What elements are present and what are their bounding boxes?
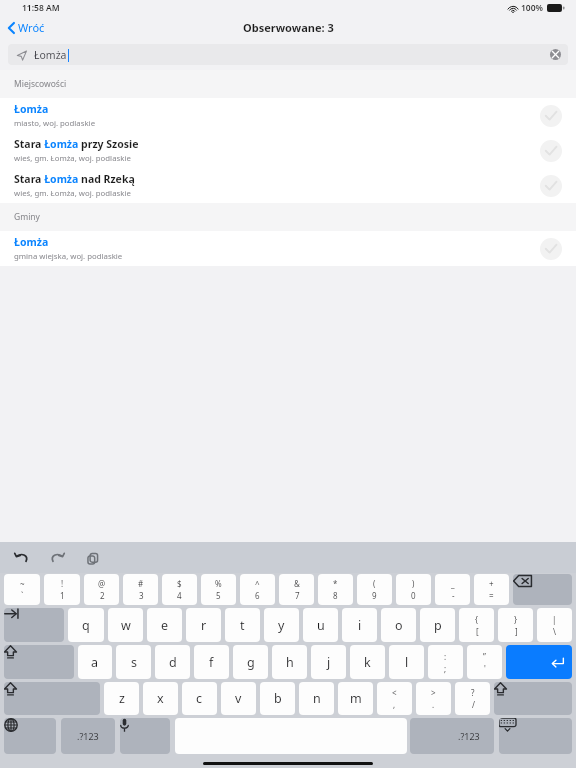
staticText: [ — [476, 626, 479, 637]
button[interactable]: z — [104, 682, 139, 715]
staticText: g — [247, 654, 255, 671]
button[interactable]: Stara Łomża nad Rzeką — [0, 168, 576, 203]
staticText: 100% — [521, 2, 544, 14]
button[interactable]: r — [186, 608, 221, 642]
button[interactable]: Paste — [82, 547, 104, 569]
button[interactable]: h — [272, 645, 307, 679]
button[interactable]: Dictation — [120, 718, 170, 754]
button[interactable]: $ — [162, 574, 197, 605]
button[interactable]: m — [338, 682, 373, 715]
button[interactable]: < — [377, 682, 412, 715]
button[interactable]: * — [318, 574, 353, 605]
button[interactable]: Shift — [4, 682, 100, 715]
button[interactable]: c — [182, 682, 217, 715]
staticText: 1 — [60, 590, 65, 601]
button[interactable]: u — [303, 608, 338, 642]
button[interactable]: Tab — [4, 608, 64, 642]
button[interactable]: Undo — [10, 547, 32, 569]
button[interactable]: Wróć — [0, 18, 55, 37]
button[interactable]: .?123 — [410, 718, 494, 754]
staticText: % — [215, 578, 222, 589]
button[interactable]: ( — [357, 574, 392, 605]
button[interactable]: Add to watched — [540, 175, 562, 197]
button[interactable]: | — [537, 608, 572, 642]
button[interactable]: Change keyboard language — [4, 718, 56, 754]
button[interactable]: b — [260, 682, 295, 715]
button[interactable]: Add to watched — [540, 140, 562, 162]
staticText: w — [121, 617, 131, 634]
staticText: ` — [21, 590, 24, 601]
staticText: - — [452, 590, 455, 601]
staticText: j — [327, 654, 331, 671]
staticText: z — [119, 690, 125, 707]
button[interactable]: Łomża — [8, 44, 568, 65]
button[interactable]: Add to watched — [540, 238, 562, 260]
staticText: p — [434, 617, 442, 634]
staticText: q — [82, 617, 90, 634]
staticText: ; — [444, 663, 447, 674]
button[interactable]: ! — [44, 574, 80, 605]
staticText: a — [91, 654, 99, 671]
button[interactable]: Return — [506, 645, 572, 679]
button[interactable]: _ — [435, 574, 470, 605]
button[interactable]: t — [225, 608, 260, 642]
button[interactable]: d — [155, 645, 190, 679]
button[interactable]: o — [381, 608, 416, 642]
button[interactable]: v — [221, 682, 256, 715]
button[interactable]: ) — [396, 574, 431, 605]
button[interactable]: q — [68, 608, 104, 642]
button[interactable]: n — [299, 682, 334, 715]
staticText: \ — [553, 626, 556, 637]
button[interactable]: Backspace — [513, 574, 572, 605]
button[interactable]: % — [201, 574, 236, 605]
staticText: k — [364, 654, 371, 671]
staticText: i — [358, 617, 362, 634]
button[interactable]: + — [474, 574, 509, 605]
button[interactable]: .?123 — [61, 718, 115, 754]
button[interactable]: } — [498, 608, 533, 642]
staticText: r — [201, 617, 207, 634]
button[interactable]: ? — [455, 682, 490, 715]
button[interactable]: Łomża — [0, 231, 576, 266]
button[interactable]: Redo — [46, 547, 68, 569]
button[interactable]: ^ — [240, 574, 275, 605]
staticText: ! — [61, 578, 64, 589]
button[interactable]: e — [147, 608, 182, 642]
button[interactable]: { — [459, 608, 494, 642]
button[interactable]: y — [264, 608, 299, 642]
button[interactable]: w — [108, 608, 143, 642]
button[interactable]: Add to watched — [540, 105, 562, 127]
staticText: e — [161, 617, 169, 634]
staticText: Wróć — [18, 20, 45, 35]
button[interactable]: Łomża — [0, 98, 576, 133]
staticText: 6 — [255, 590, 260, 601]
button[interactable]: l — [389, 645, 424, 679]
staticText: } — [514, 614, 518, 625]
button[interactable]: j — [311, 645, 346, 679]
button[interactable]: Stara Łomża przy Szosie — [0, 133, 576, 168]
button[interactable]: Hide keyboard — [499, 718, 572, 754]
button[interactable]: @ — [84, 574, 119, 605]
button[interactable]: ~ — [4, 574, 40, 605]
button[interactable]: g — [233, 645, 268, 679]
staticText: x — [157, 690, 164, 707]
button[interactable]: p — [420, 608, 455, 642]
button[interactable]: : — [428, 645, 463, 679]
button[interactable]: a — [78, 645, 112, 679]
button[interactable]: f — [194, 645, 229, 679]
button[interactable]: Shift — [4, 645, 74, 679]
button[interactable]: # — [123, 574, 158, 605]
staticText: gmina wiejska, woj. podlaskie — [14, 251, 123, 262]
button[interactable]: i — [342, 608, 377, 642]
button[interactable]: & — [279, 574, 314, 605]
button[interactable]: > — [416, 682, 451, 715]
button[interactable]: ” — [467, 645, 502, 679]
button[interactable]: Clear text — [550, 49, 561, 60]
staticText: _ — [451, 578, 455, 589]
button[interactable]: s — [116, 645, 151, 679]
button[interactable]: Shift — [494, 682, 572, 715]
staticText: ( — [373, 578, 376, 589]
button[interactable]: x — [143, 682, 178, 715]
button[interactable]: k — [350, 645, 385, 679]
